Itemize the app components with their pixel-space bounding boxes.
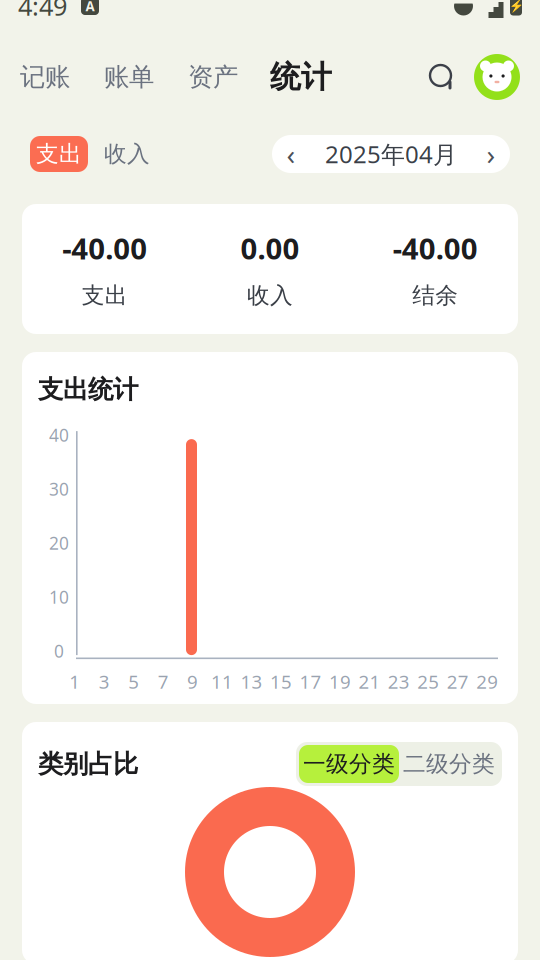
staticText: 25 xyxy=(417,669,439,694)
button[interactable]: 一级分类 xyxy=(299,745,399,783)
staticText: 2025年04月 xyxy=(325,138,457,170)
staticText: 13 xyxy=(240,669,262,694)
staticText: 17 xyxy=(299,669,321,694)
button[interactable]: 二级分类 xyxy=(399,745,499,783)
button[interactable]: 资产 xyxy=(186,55,240,98)
staticText: ‹ xyxy=(286,135,295,173)
staticText: 7 xyxy=(158,669,169,694)
button[interactable]: 下一月 xyxy=(472,135,510,173)
staticText: 40 xyxy=(49,424,69,447)
staticText: 10 xyxy=(49,586,69,609)
staticText: -40.00 xyxy=(62,229,147,268)
staticText: 27 xyxy=(447,669,469,694)
staticText: 类别占比 xyxy=(38,748,138,779)
staticText: 资产 xyxy=(188,61,238,92)
staticText: 15 xyxy=(270,669,292,694)
staticText: 0.00 xyxy=(240,229,299,268)
staticText: 记账 xyxy=(20,61,70,92)
staticText: 二级分类 xyxy=(403,750,495,778)
staticText: 一级分类 xyxy=(303,750,395,778)
staticText: 23 xyxy=(388,669,410,694)
button[interactable]: 记账 xyxy=(18,55,72,98)
button[interactable]: 统计 xyxy=(268,52,334,102)
staticText: A xyxy=(85,0,94,15)
staticText: 支出统计 xyxy=(38,374,138,405)
staticText: 21 xyxy=(358,669,380,694)
staticText: 11 xyxy=(211,669,233,694)
staticText: 账单 xyxy=(104,61,154,92)
staticText: 9 xyxy=(187,669,198,694)
staticText: 29 xyxy=(476,669,498,694)
staticText: 5 xyxy=(128,669,139,694)
staticText: 1 xyxy=(69,669,80,694)
button[interactable]: 搜索 xyxy=(422,57,462,97)
button[interactable]: 上一月 xyxy=(272,135,310,173)
staticText: 19 xyxy=(329,669,351,694)
button[interactable]: 账单 xyxy=(102,55,156,98)
staticText: 支出 xyxy=(36,140,82,168)
button[interactable]: 收入 xyxy=(100,136,154,172)
button[interactable]: 我的账户 xyxy=(472,52,522,102)
staticText: 0 xyxy=(54,640,64,663)
staticText: 支出 xyxy=(82,282,128,309)
staticText: 统计 xyxy=(270,58,332,96)
staticText: 30 xyxy=(49,478,69,501)
staticText: › xyxy=(486,135,495,173)
staticText: ⚡ xyxy=(508,0,523,13)
staticText: 4:49 xyxy=(18,0,67,23)
staticText: 3 xyxy=(99,669,110,694)
staticText: 20 xyxy=(49,532,69,555)
staticText: 收入 xyxy=(104,140,150,168)
button[interactable]: 支出 xyxy=(30,136,88,172)
staticText: 结余 xyxy=(412,282,458,309)
staticText: -40.00 xyxy=(393,229,478,268)
staticText: 收入 xyxy=(247,282,293,309)
